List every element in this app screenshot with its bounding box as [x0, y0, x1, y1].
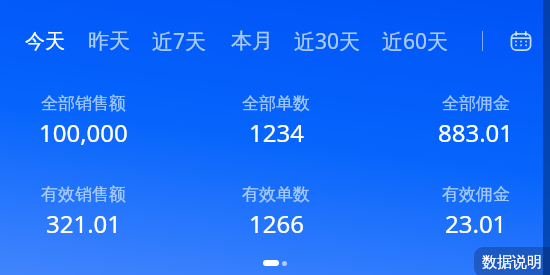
staticText: 昨天 — [88, 28, 130, 54]
staticText: 883.01 — [438, 116, 514, 149]
staticText: 今天 — [25, 29, 65, 54]
button[interactable]: 有效佣金 — [386, 184, 550, 240]
staticText: 1234 — [249, 116, 304, 149]
staticText: 321.01 — [46, 207, 122, 240]
button[interactable]: 有效销售额 — [0, 184, 173, 240]
staticText: 数据说明 — [482, 253, 542, 272]
staticText: 全部佣金 — [442, 93, 510, 114]
staticText: 1266 — [249, 207, 304, 240]
button[interactable]: 全部单数 — [186, 93, 366, 149]
staticText: 有效销售额 — [41, 184, 126, 205]
staticText: 近60天 — [382, 27, 449, 56]
staticText: 全部单数 — [242, 93, 310, 114]
button[interactable]: 数据说明 — [474, 247, 550, 275]
button[interactable]: 近30天 — [294, 21, 361, 62]
staticText: 近30天 — [294, 27, 361, 56]
button[interactable]: 本月 — [231, 22, 273, 60]
staticText: 有效单数 — [242, 184, 310, 205]
staticText: 有效佣金 — [442, 184, 510, 205]
staticText: 全部销售额 — [41, 93, 126, 114]
button[interactable]: 近7天 — [152, 21, 207, 62]
staticText: 本月 — [231, 28, 273, 54]
button[interactable]: Calendar — [509, 29, 533, 53]
button[interactable]: 今天 — [25, 23, 65, 60]
button[interactable]: 昨天 — [88, 22, 130, 60]
staticText: 23.01 — [445, 207, 507, 240]
button[interactable]: 有效单数 — [186, 184, 366, 240]
staticText: 近7天 — [152, 27, 207, 56]
button[interactable]: 近60天 — [382, 21, 449, 62]
staticText: 100,000 — [39, 116, 128, 149]
button[interactable]: 全部销售额 — [0, 93, 173, 149]
button[interactable]: 全部佣金 — [386, 93, 550, 149]
